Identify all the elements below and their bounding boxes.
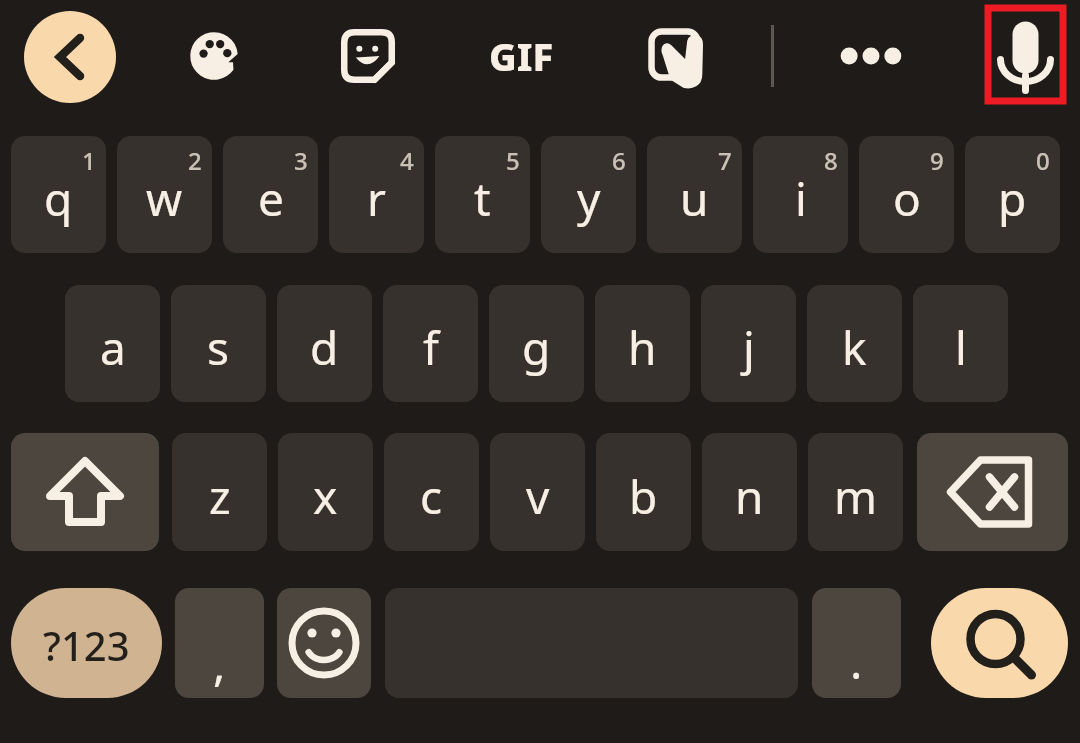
staticText: m: [834, 465, 878, 528]
staticText: r: [367, 167, 386, 230]
staticText: l: [955, 316, 967, 379]
staticText: y: [577, 167, 601, 230]
staticText: i: [795, 167, 807, 230]
staticText: c: [420, 465, 443, 528]
staticText: a: [100, 316, 126, 379]
button[interactable]: GIF: [480, 20, 562, 92]
staticText: 3: [294, 144, 308, 177]
button[interactable]: r: [329, 136, 424, 253]
button[interactable]: Clipboard: [640, 20, 712, 92]
button[interactable]: ?123: [11, 588, 162, 698]
staticText: 8: [824, 144, 838, 177]
button[interactable]: Search: [931, 588, 1068, 698]
staticText: t: [474, 167, 491, 230]
staticText: 2: [188, 144, 202, 177]
button[interactable]: Emoji: [277, 588, 371, 698]
staticText: GIF: [489, 30, 554, 82]
button[interactable]: g: [489, 285, 584, 402]
staticText: x: [313, 465, 338, 528]
staticText: g: [522, 316, 551, 379]
staticText: ,: [213, 632, 226, 695]
button[interactable]: k: [807, 285, 902, 402]
staticText: ?123: [43, 618, 130, 672]
button[interactable]: i: [753, 136, 848, 253]
button[interactable]: n: [702, 433, 797, 551]
button[interactable]: e: [223, 136, 318, 253]
button[interactable]: Shift: [11, 433, 159, 551]
staticText: u: [680, 167, 709, 230]
staticText: 1: [82, 144, 96, 177]
staticText: 0: [1036, 144, 1050, 177]
button[interactable]: x: [278, 433, 373, 551]
button[interactable]: Back: [24, 11, 116, 103]
button[interactable]: h: [595, 285, 690, 402]
button[interactable]: l: [913, 285, 1008, 402]
staticText: .: [850, 630, 863, 693]
button[interactable]: t: [435, 136, 530, 253]
staticText: 9: [930, 144, 944, 177]
staticText: p: [998, 167, 1027, 230]
button[interactable]: y: [541, 136, 636, 253]
staticText: f: [423, 316, 439, 379]
staticText: h: [628, 316, 657, 379]
staticText: j: [743, 316, 755, 379]
staticText: o: [893, 167, 921, 230]
button[interactable]: z: [172, 433, 267, 551]
button[interactable]: b: [596, 433, 691, 551]
staticText: z: [209, 465, 231, 528]
button[interactable]: v: [490, 433, 585, 551]
staticText: 6: [612, 144, 626, 177]
button[interactable]: Backspace: [917, 433, 1068, 551]
staticText: v: [526, 465, 550, 528]
button[interactable]: d: [277, 285, 372, 402]
button[interactable]: s: [171, 285, 266, 402]
button[interactable]: f: [383, 285, 478, 402]
button[interactable]: p: [965, 136, 1060, 253]
staticText: n: [735, 465, 764, 528]
button[interactable]: a: [65, 285, 160, 402]
button[interactable]: o: [859, 136, 954, 253]
staticText: q: [44, 167, 73, 230]
button[interactable]: c: [384, 433, 479, 551]
button[interactable]: Themes: [178, 20, 250, 92]
button[interactable]: j: [701, 285, 796, 402]
staticText: 7: [718, 144, 732, 177]
staticText: d: [310, 316, 339, 379]
staticText: w: [146, 167, 183, 230]
button[interactable]: u: [647, 136, 742, 253]
staticText: 5: [506, 144, 520, 177]
staticText: 4: [400, 144, 414, 177]
staticText: e: [258, 167, 284, 230]
button[interactable]: q: [11, 136, 106, 253]
button[interactable]: Voice input: [985, 5, 1066, 104]
staticText: s: [207, 316, 230, 379]
button[interactable]: w: [117, 136, 212, 253]
button[interactable]: Stickers: [332, 20, 404, 92]
button[interactable]: .: [812, 588, 901, 698]
button[interactable]: More options: [832, 25, 910, 87]
button[interactable]: m: [808, 433, 903, 551]
staticText: k: [842, 316, 867, 379]
staticText: b: [629, 465, 658, 528]
button[interactable]: ,: [175, 588, 264, 698]
